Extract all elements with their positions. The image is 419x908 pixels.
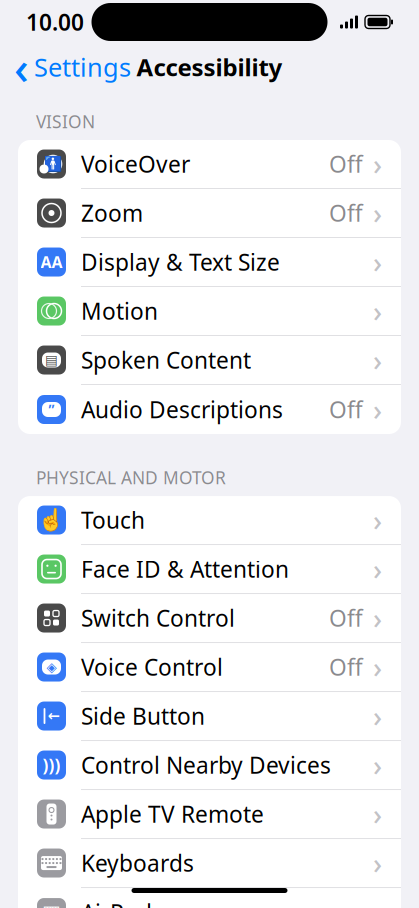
button[interactable]: ☝ (18, 496, 401, 545)
staticText: ☝ (38, 508, 65, 532)
button[interactable]: Keyboards (18, 839, 401, 888)
staticText: › (373, 844, 382, 882)
staticText: › (373, 194, 382, 232)
button[interactable]: ▤ (18, 336, 401, 385)
staticText: ))) (42, 753, 60, 776)
staticText: › (373, 292, 382, 330)
staticText: Display & Text Size (81, 247, 280, 277)
staticText: Off (329, 149, 363, 179)
staticText: › (373, 697, 382, 735)
staticText: VISION (36, 110, 95, 133)
staticText: ← (47, 708, 59, 724)
staticText: Off (329, 652, 363, 682)
staticText: ‹ (14, 37, 29, 97)
button[interactable]: ))) (18, 741, 401, 790)
staticText: › (373, 145, 382, 183)
staticText: AA (40, 251, 62, 273)
staticText: Side Button (81, 701, 205, 731)
staticText: Accessibility (136, 51, 282, 83)
button[interactable]: ” (18, 385, 401, 434)
staticText: › (373, 746, 382, 784)
staticText: Off (329, 394, 363, 425)
staticText: › (373, 501, 382, 539)
staticText: › (373, 341, 382, 379)
staticText: Settings (34, 50, 131, 84)
staticText: PHYSICAL AND MOTOR (36, 466, 226, 489)
button[interactable]: 🚹 (18, 140, 401, 189)
staticText: Keyboards (81, 848, 194, 878)
button[interactable]: Zoom (18, 189, 401, 238)
staticText: Control Nearby Devices (81, 750, 331, 780)
button[interactable]: Switch Control (18, 594, 401, 643)
staticText: Apple TV Remote (81, 799, 264, 829)
button[interactable]: AA (18, 238, 401, 287)
staticText: › (373, 795, 382, 833)
button[interactable]: ▦ (18, 888, 401, 908)
staticText: Touch (81, 505, 145, 535)
staticText: 🚹 (44, 156, 62, 172)
staticText: Zoom (81, 198, 143, 228)
staticText: Switch Control (81, 603, 235, 633)
staticText: Off (329, 198, 363, 228)
staticText: 10.00 (26, 7, 84, 37)
staticText: Motion (81, 296, 158, 326)
staticText: Off (329, 603, 363, 633)
button[interactable]: ◈ (18, 643, 401, 692)
button[interactable]: Face ID & Attention (18, 545, 401, 594)
staticText: ▦ (42, 901, 61, 908)
staticText: Voice Control (81, 652, 223, 682)
staticText: Audio Descriptions (81, 394, 283, 425)
button[interactable]: ← (18, 692, 401, 741)
staticText: VoiceOver (81, 149, 190, 179)
staticText: ◈ (46, 659, 56, 675)
button[interactable]: Apple TV Remote (18, 790, 401, 839)
staticText: ▤ (45, 352, 58, 368)
button[interactable]: Motion (18, 287, 401, 336)
staticText: AirPods (81, 897, 163, 908)
staticText: › (373, 550, 382, 588)
staticText: › (373, 648, 382, 686)
staticText: › (373, 391, 382, 428)
button[interactable]: ‹ (2, 45, 143, 89)
staticText: Spoken Content (81, 345, 251, 375)
staticText: › (373, 599, 382, 637)
staticText: Face ID & Attention (81, 554, 289, 584)
staticText: ” (48, 401, 54, 418)
staticText: › (373, 243, 382, 281)
